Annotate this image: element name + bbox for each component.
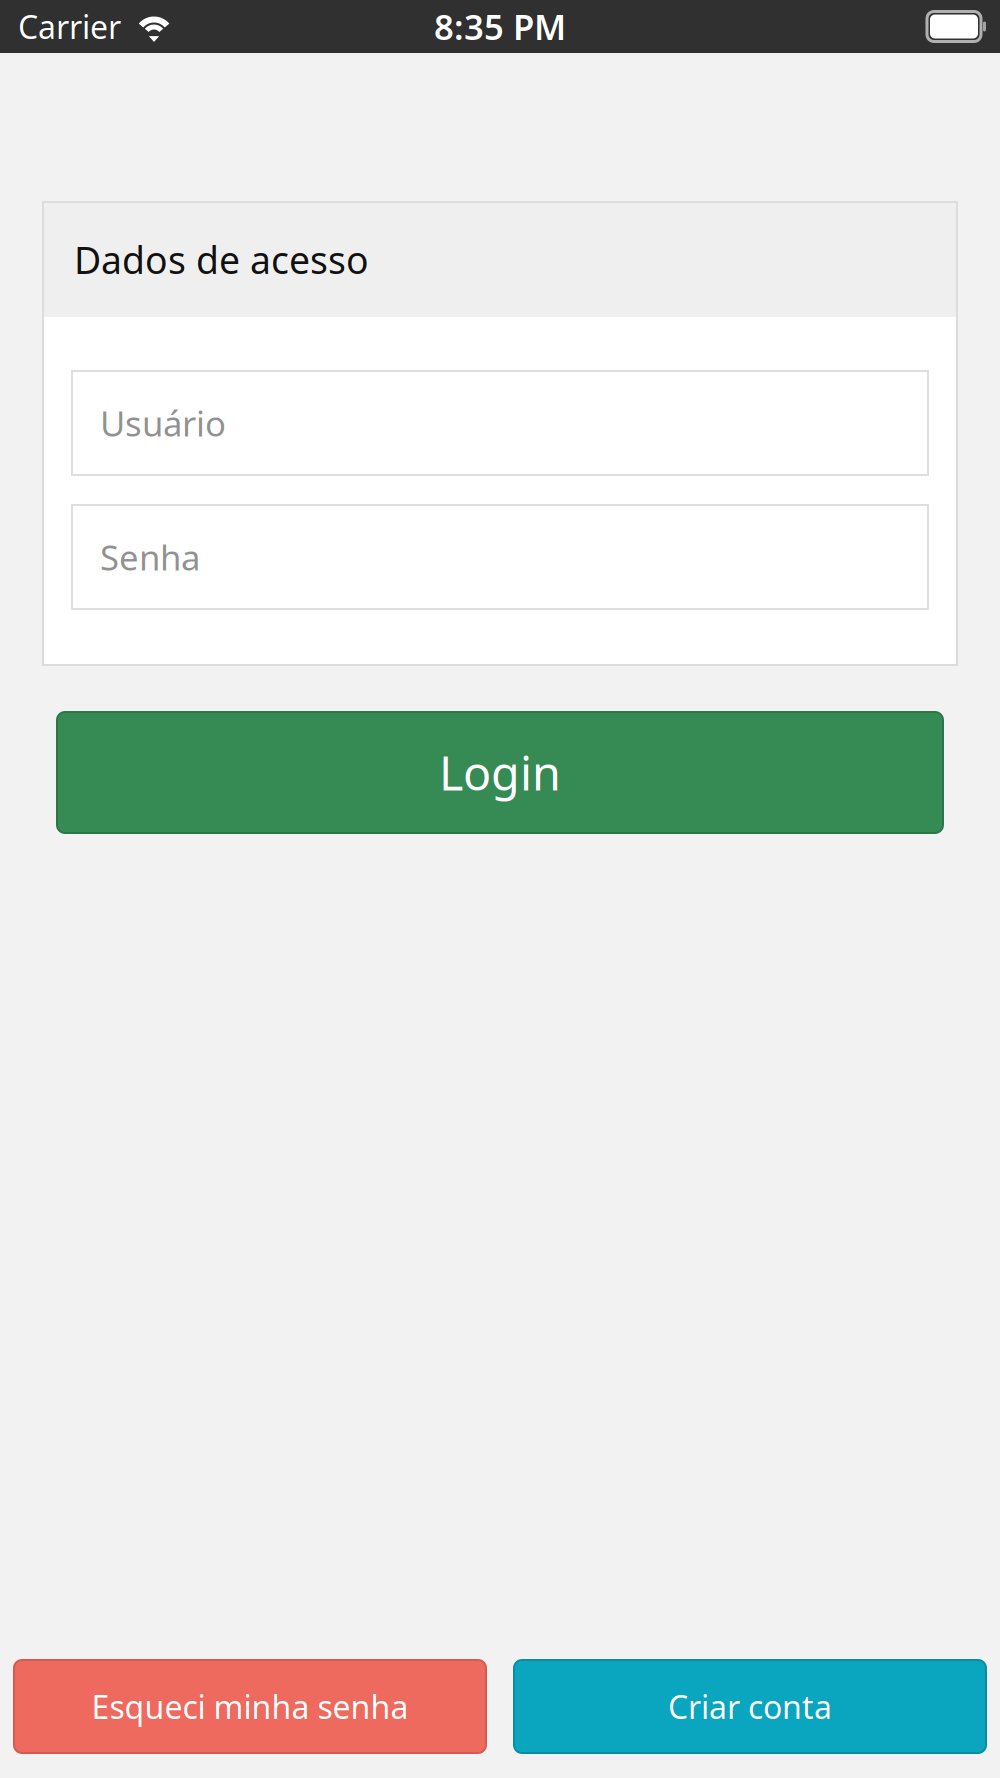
button[interactable]: Usuário [72,371,928,475]
staticText: Senha [100,534,200,580]
staticText: Login [439,741,561,803]
button[interactable]: Login [57,712,943,833]
staticText: Dados de acesso [74,235,369,284]
staticText: Criar conta [668,1685,832,1728]
button[interactable]: Senha [72,505,928,609]
staticText: Esqueci minha senha [91,1685,408,1728]
staticText: Usuário [100,400,226,446]
button[interactable]: Criar conta [514,1660,986,1753]
staticText: 8:35 PM [434,3,566,49]
button[interactable]: Esqueci minha senha [14,1660,486,1753]
staticText: Carrier [18,5,121,48]
